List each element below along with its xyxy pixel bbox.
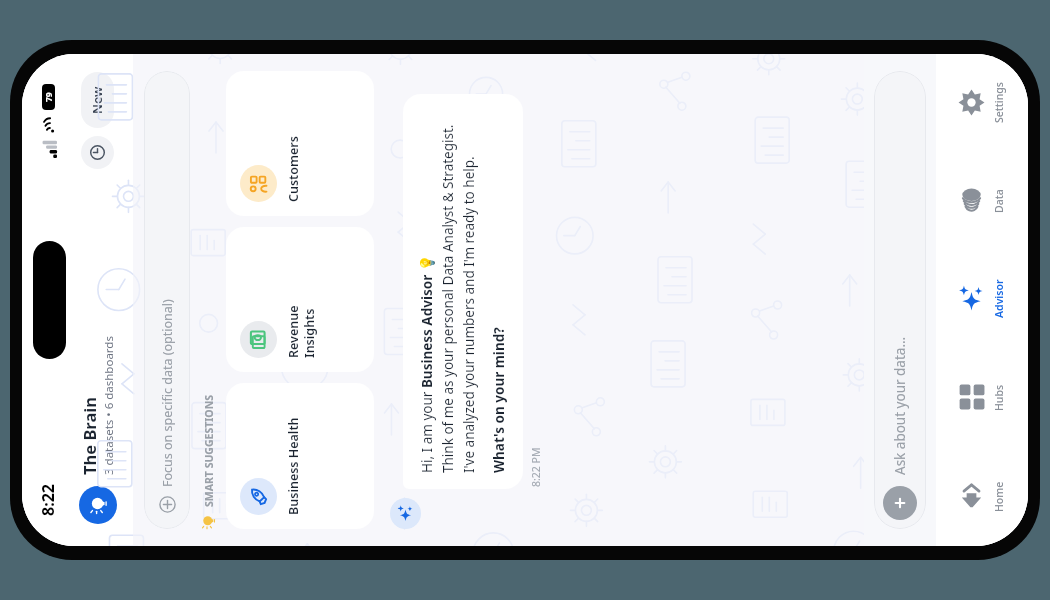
button[interactable]: History [81,136,114,169]
staticText: Revenue Insights [285,305,317,358]
staticText: Home [992,481,1006,512]
button[interactable]: Settings [936,54,1028,152]
staticText: SMART SUGGESTIONS [202,395,216,507]
staticText: New [89,86,106,114]
button[interactable]: Focus on specific data (optional) [144,71,190,529]
staticText: What's on your mind? [490,327,508,473]
staticText: Hi, I am your Business Advisor 💡 Think o… [418,124,478,473]
staticText: 3 datasets • 6 dashboards [101,336,117,475]
staticText: Settings [992,82,1006,123]
staticText: Advisor [992,279,1006,318]
button[interactable]: New [81,72,114,128]
staticText: The Brain [78,397,100,475]
button[interactable]: Home [936,447,1028,546]
button[interactable]: Advisor [936,250,1028,348]
staticText: Hubs [992,384,1006,411]
button[interactable]: The Brain [79,486,117,524]
button[interactable]: Customers [226,71,374,216]
button[interactable]: Hubs [936,348,1028,447]
staticText: 79 [43,92,55,102]
staticText: Data [992,189,1006,213]
staticText: Ask about your data... [891,336,909,475]
other: Attach [883,486,917,520]
button[interactable]: Business Health [226,383,374,529]
button[interactable]: Revenue Insights [226,227,374,372]
staticText: 8:22 PM [529,447,543,487]
staticText: 8:22 [37,484,59,516]
staticText: Business Health [285,417,302,515]
button[interactable]: Data [936,152,1028,250]
staticText: Customers [285,136,302,202]
staticText: Focus on specific data (optional) [159,299,176,487]
button[interactable]: Attach [874,71,926,529]
